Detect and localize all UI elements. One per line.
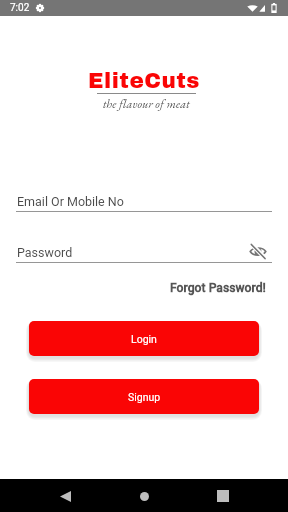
staticText: EliteCuts — [88, 69, 200, 92]
button[interactable]: Login — [29, 321, 259, 356]
button[interactable]: Recent apps — [212, 485, 234, 507]
button[interactable]: Signup — [29, 379, 259, 414]
button[interactable]: Home — [133, 485, 155, 507]
button[interactable]: Password — [16, 245, 272, 265]
staticText: Password — [17, 245, 73, 260]
staticText: the flavour of meat — [103, 96, 190, 112]
staticText: Email Or Mobile No — [17, 194, 124, 209]
staticText: 7:02 — [10, 2, 30, 14]
staticText: Login — [131, 333, 157, 345]
button[interactable]: Show password — [248, 241, 268, 261]
button[interactable]: Back — [54, 485, 76, 507]
button[interactable]: Forgot Password! — [150, 280, 266, 296]
staticText: Signup — [128, 391, 161, 403]
button[interactable]: Email Or Mobile No — [16, 194, 272, 214]
staticText: Forgot Password! — [170, 281, 266, 295]
